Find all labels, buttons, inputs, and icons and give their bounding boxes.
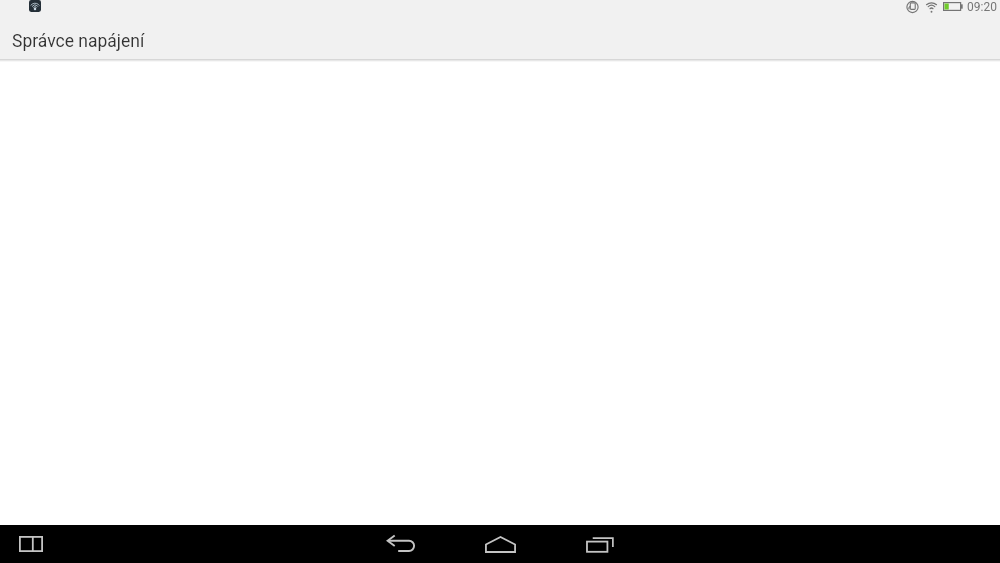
button[interactable]: Split screen xyxy=(13,526,49,562)
staticText: Správce napájení xyxy=(12,31,145,52)
button[interactable]: Recent apps xyxy=(582,526,618,562)
button[interactable]: Back xyxy=(382,526,418,562)
button[interactable]: Home xyxy=(482,526,518,562)
staticText: 09:20 xyxy=(967,0,997,14)
